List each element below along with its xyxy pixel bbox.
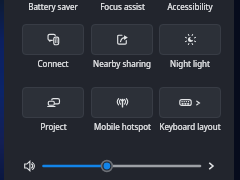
button[interactable]: Project <box>22 87 84 132</box>
button[interactable]: Volume <box>24 159 38 173</box>
staticText: Battery saver <box>28 1 78 12</box>
staticText: Nearby sharing <box>93 58 151 69</box>
staticText: Night light <box>170 58 210 69</box>
button[interactable]: Mobile hotspot <box>91 87 153 132</box>
staticText: Project <box>40 121 67 132</box>
staticText: Accessibility <box>167 1 213 12</box>
staticText: Keyboard layout <box>159 121 221 132</box>
staticText: Connect <box>37 58 69 69</box>
staticText: Mobile hotspot <box>94 121 151 132</box>
button[interactable]: Open volume settings <box>205 160 217 172</box>
button[interactable]: Connect <box>22 24 84 69</box>
button[interactable] <box>38 158 205 174</box>
button[interactable]: Night light <box>159 24 221 69</box>
button[interactable]: Keyboard layout <box>159 87 221 132</box>
staticText: Focus assist <box>100 1 145 12</box>
button[interactable]: Nearby sharing <box>91 24 153 69</box>
